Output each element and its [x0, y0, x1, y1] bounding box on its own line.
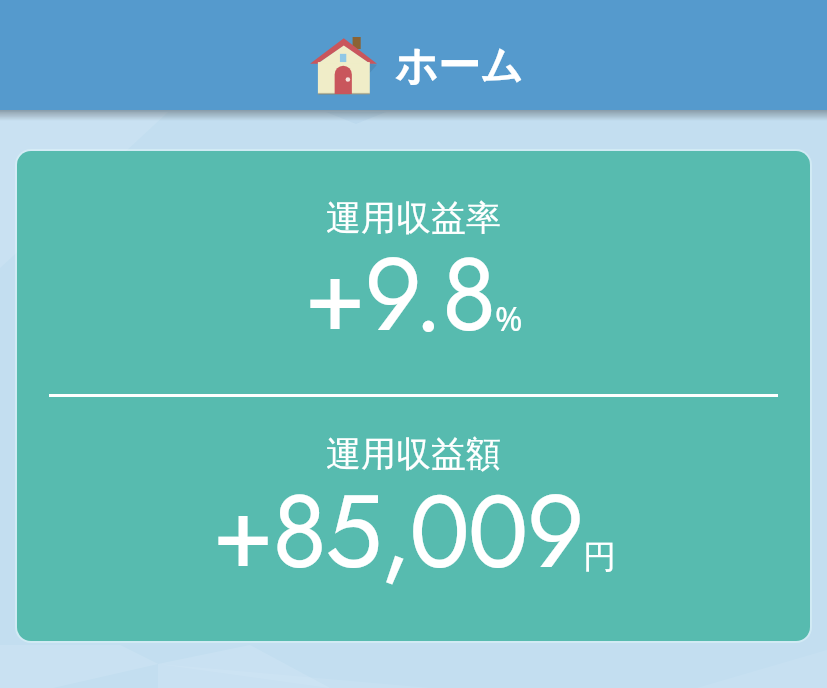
other: Home	[310, 37, 377, 95]
staticText: 円	[583, 536, 616, 578]
staticText: %	[495, 296, 523, 341]
button[interactable]: Home	[0, 0, 827, 110]
staticText: 運用収益率	[17, 196, 810, 240]
staticText: 運用収益額	[17, 432, 810, 476]
staticText: +9.8	[304, 222, 495, 368]
button[interactable]: 運用収益率	[17, 151, 810, 641]
staticText: +85,009	[212, 459, 583, 605]
staticText: ホーム	[395, 40, 523, 93]
